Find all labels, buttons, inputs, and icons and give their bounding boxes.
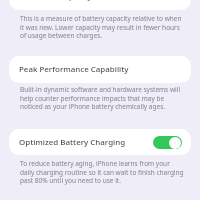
button[interactable]: Maximum Capacity [9,0,191,10]
staticText: To reduce battery aging, iPhone learns f… [20,159,185,185]
button[interactable]: Peak Performance Capability [9,56,191,83]
staticText: Peak Performance Capability [19,64,129,75]
button[interactable]: Optimized Battery Charging [9,129,191,155]
button[interactable]: Optimized Battery Charging [153,136,182,149]
staticText: Maximum Capacity [19,0,92,2]
staticText: Built-in dynamic software and hardware s… [20,85,185,111]
staticText: Optimized Battery Charging [19,137,126,148]
staticText: This is a measure of battery capacity re… [20,14,185,40]
